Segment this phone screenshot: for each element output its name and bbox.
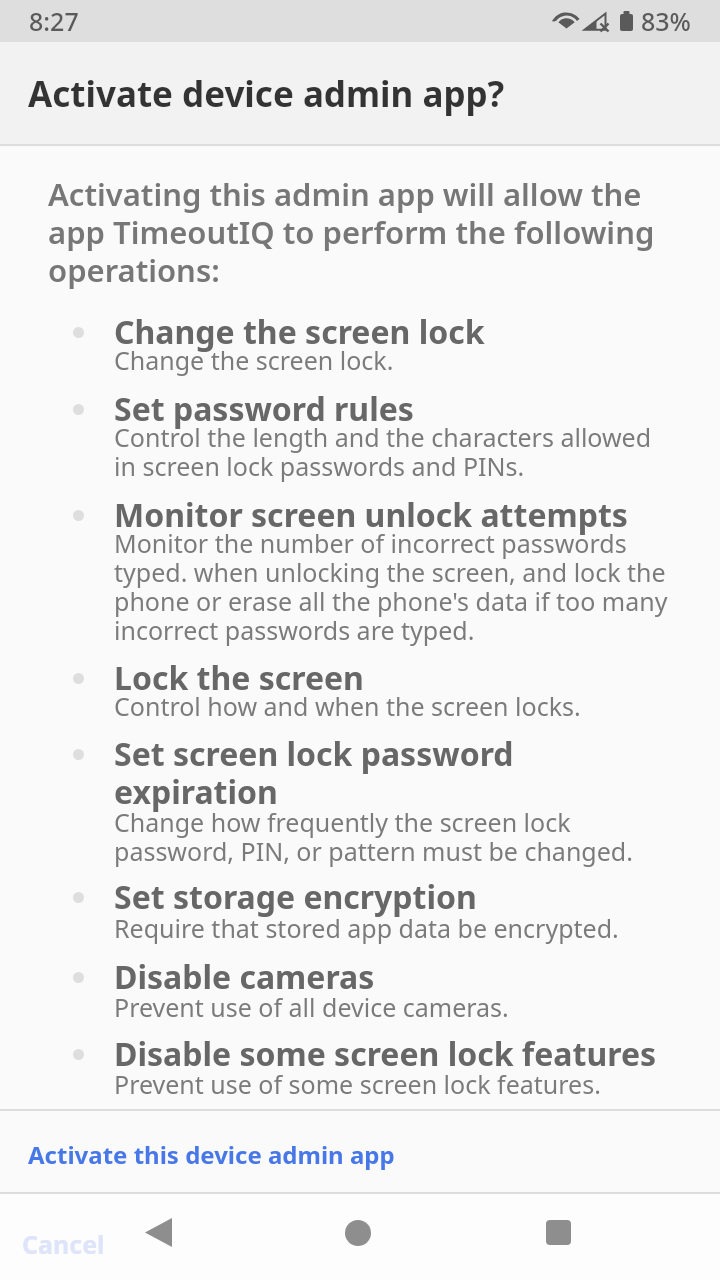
staticText: Activating this admin app will allow the… <box>48 173 655 291</box>
staticText: Monitor screen unlock attempts <box>114 493 628 537</box>
staticText: Control the length and the characters al… <box>114 420 652 483</box>
button[interactable]: Cancel <box>10 1222 120 1266</box>
staticText: Set screen lock password expiration <box>114 732 514 813</box>
staticText: Disable cameras <box>114 955 375 999</box>
staticText: Disable some screen lock features <box>114 1032 657 1076</box>
button[interactable] <box>130 1206 186 1262</box>
staticText: Change the screen lock. <box>114 343 394 377</box>
staticText: 8:27 <box>29 4 79 38</box>
staticText: 83% <box>641 4 691 38</box>
staticText: Require that stored app data be encrypte… <box>114 911 619 945</box>
staticText: Control how and when the screen locks. <box>114 689 581 723</box>
staticText: Monitor the number of incorrect password… <box>114 526 668 647</box>
staticText: Lock the screen <box>114 656 364 700</box>
staticText: Prevent use of some screen lock features… <box>114 1067 601 1101</box>
staticText: Set password rules <box>114 387 414 431</box>
button[interactable]: Activate this device admin app <box>0 1111 720 1192</box>
staticText: Cancel <box>22 1227 105 1261</box>
staticText: Change how frequently the screen lock pa… <box>114 805 633 868</box>
staticText: Set storage encryption <box>114 875 477 919</box>
button[interactable] <box>530 1206 586 1262</box>
button[interactable] <box>332 1206 388 1262</box>
staticText: Activate device admin app? <box>28 70 505 118</box>
staticText: Prevent use of all device cameras. <box>114 990 509 1024</box>
staticText: Change the screen lock <box>114 310 485 354</box>
staticText: Activate this device admin app <box>28 1138 395 1171</box>
